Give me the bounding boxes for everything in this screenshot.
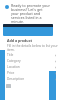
- button[interactable]: Title: [0, 52, 64, 58]
- staticText: Category: [7, 59, 21, 63]
- button[interactable]: [3, 24, 53, 36]
- staticText: Price: [7, 71, 15, 75]
- button[interactable]: Price: [0, 70, 64, 76]
- staticText: Location: [7, 65, 20, 69]
- staticText: Description: [7, 77, 25, 81]
- staticText: Add a product: [7, 38, 33, 43]
- button[interactable]: Description: [0, 76, 64, 82]
- staticText: Ready to promote your business? Let's ge…: [11, 3, 51, 24]
- button[interactable]: Location: [0, 64, 64, 70]
- staticText: Title: [7, 53, 14, 57]
- button[interactable]: Account: [5, 5, 9, 9]
- button[interactable]: Category: [0, 58, 64, 64]
- staticText: Fill in the details below to list your i…: [7, 44, 58, 52]
